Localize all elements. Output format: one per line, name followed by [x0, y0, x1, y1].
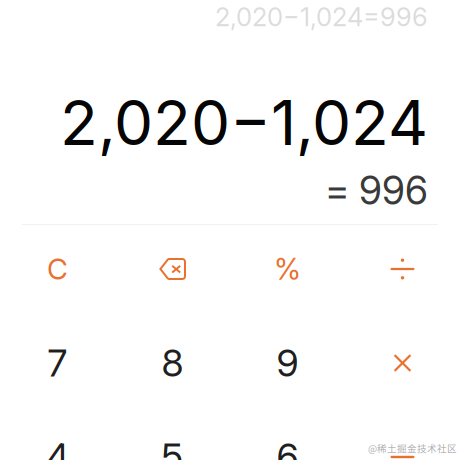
button[interactable]: Minus — [345, 410, 460, 460]
staticText: @稀土掘金技术社区 — [368, 441, 457, 455]
button[interactable]: 9 — [230, 316, 345, 410]
button[interactable]: % — [230, 222, 345, 316]
staticText: 2,020−1,024=996 — [215, 1, 428, 32]
staticText: = 996 — [325, 167, 428, 214]
staticText: 7 — [47, 340, 67, 386]
staticText: 4 — [46, 434, 69, 460]
staticText: 9 — [276, 340, 298, 386]
button[interactable]: C — [0, 222, 115, 316]
staticText: 5 — [161, 434, 183, 460]
staticText: C — [47, 252, 68, 286]
button[interactable]: 5 — [115, 410, 230, 460]
staticText: 6 — [276, 434, 298, 460]
staticText: 8 — [161, 340, 183, 386]
button[interactable]: 8 — [115, 316, 230, 410]
button[interactable]: Backspace — [115, 222, 230, 316]
button[interactable]: Multiply — [345, 316, 460, 410]
button[interactable]: 6 — [230, 410, 345, 460]
button[interactable]: Divide — [345, 222, 460, 316]
button[interactable]: 4 — [0, 410, 115, 460]
staticText: 2,020−1,024 — [60, 85, 428, 160]
staticText: % — [274, 251, 301, 287]
button[interactable]: 7 — [0, 316, 115, 410]
